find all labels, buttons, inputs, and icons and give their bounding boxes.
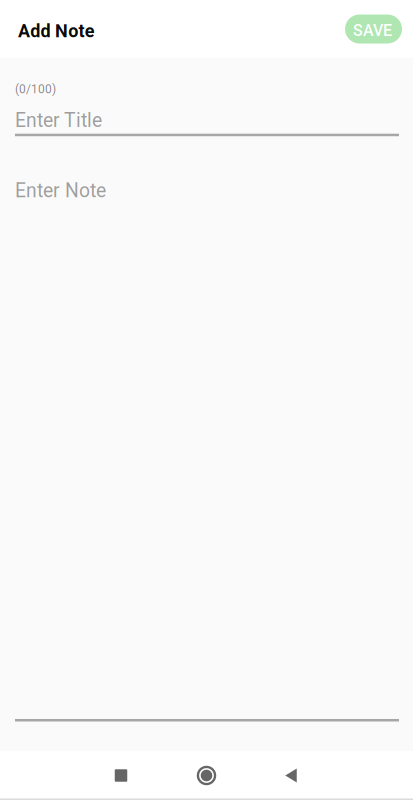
button[interactable]: Home bbox=[175, 751, 237, 800]
staticText: SAVE bbox=[353, 21, 392, 40]
button[interactable]: Back bbox=[260, 751, 322, 800]
button[interactable]: SAVE bbox=[345, 14, 402, 43]
button[interactable]: Recent apps bbox=[90, 751, 152, 800]
staticText: Enter Note bbox=[15, 179, 106, 202]
staticText: Enter Title bbox=[15, 109, 102, 132]
staticText: (0/100) bbox=[15, 82, 56, 96]
staticText: Add Note bbox=[18, 20, 95, 42]
